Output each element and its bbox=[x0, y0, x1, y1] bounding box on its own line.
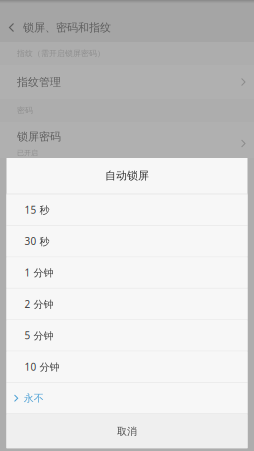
staticText: 指纹（需开启锁屏密码） bbox=[17, 48, 105, 58]
button[interactable]: 5 分钟 bbox=[6, 320, 247, 351]
staticText: 15 秒 bbox=[24, 203, 49, 217]
staticText: 锁屏密码 bbox=[17, 130, 61, 143]
button[interactable]: 永不 bbox=[6, 383, 247, 413]
staticText: 自动锁屏 bbox=[105, 169, 149, 182]
button[interactable]: Back bbox=[0, 13, 23, 42]
button[interactable]: 锁屏密码 bbox=[0, 122, 254, 158]
staticText: 5 分钟 bbox=[24, 329, 53, 342]
button[interactable]: 15 秒 bbox=[6, 195, 247, 225]
button[interactable]: 30 秒 bbox=[6, 226, 247, 256]
staticText: 已开启 bbox=[17, 148, 38, 157]
staticText: 锁屏、密码和指纹 bbox=[23, 20, 111, 34]
staticText: 2 分钟 bbox=[24, 297, 53, 311]
staticText: 30 秒 bbox=[24, 234, 49, 248]
button[interactable]: 1 分钟 bbox=[6, 257, 247, 288]
staticText: 10 分钟 bbox=[24, 360, 59, 374]
button[interactable]: 2 分钟 bbox=[6, 289, 247, 319]
button[interactable]: 指纹管理 bbox=[0, 65, 254, 99]
button[interactable]: 取消 bbox=[6, 414, 247, 448]
staticText: 取消 bbox=[117, 425, 137, 438]
staticText: 密码 bbox=[17, 105, 33, 115]
staticText: 1 分钟 bbox=[24, 266, 53, 279]
button[interactable]: 10 分钟 bbox=[6, 352, 247, 382]
staticText: 指纹管理 bbox=[17, 75, 61, 89]
staticText: 永不 bbox=[24, 392, 44, 404]
